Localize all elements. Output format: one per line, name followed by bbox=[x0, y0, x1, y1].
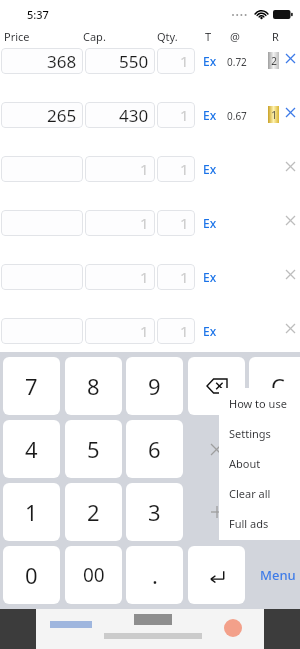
staticText: 6 bbox=[148, 434, 161, 464]
staticText: Ex bbox=[203, 269, 217, 285]
staticText: 1 bbox=[180, 213, 189, 233]
staticText: 00 bbox=[83, 562, 105, 588]
button[interactable]: Ex bbox=[198, 320, 222, 342]
staticText: 9 bbox=[148, 371, 161, 401]
button[interactable]: Multiply bbox=[188, 420, 245, 478]
button[interactable]: 8 bbox=[65, 357, 122, 415]
button[interactable]: 6 bbox=[126, 420, 183, 478]
staticText: 8 bbox=[87, 371, 100, 401]
button[interactable]: 1 bbox=[157, 318, 195, 344]
staticText: 1 bbox=[180, 51, 189, 71]
staticText: How to use bbox=[229, 396, 287, 411]
button[interactable]: Ex bbox=[198, 50, 222, 72]
button[interactable]: 9 bbox=[126, 357, 183, 415]
staticText: 1 bbox=[25, 497, 38, 527]
button[interactable] bbox=[1, 210, 83, 236]
staticText: 1 bbox=[180, 321, 189, 341]
button[interactable]: 1 bbox=[157, 264, 195, 290]
staticText: @ bbox=[230, 29, 240, 44]
button[interactable]: Clear all bbox=[229, 478, 300, 508]
staticText: 3 bbox=[148, 497, 161, 527]
button[interactable]: Delete row bbox=[282, 50, 299, 67]
staticText: 1 bbox=[180, 159, 189, 179]
button[interactable]: Delete row bbox=[282, 158, 299, 175]
staticText: Cap. bbox=[83, 29, 106, 44]
staticText: 550 bbox=[119, 50, 149, 73]
button[interactable]: 1 bbox=[3, 483, 60, 541]
button[interactable]: 5 bbox=[65, 420, 122, 478]
staticText: About bbox=[229, 456, 261, 471]
staticText: 1 bbox=[180, 267, 189, 287]
button[interactable]: C bbox=[249, 357, 300, 415]
button[interactable]: Delete row bbox=[282, 212, 299, 229]
staticText: 0.67 bbox=[227, 109, 247, 123]
staticText: 0.72 bbox=[227, 55, 247, 69]
staticText: Qty. bbox=[157, 29, 178, 44]
staticText: 1 bbox=[140, 213, 149, 233]
staticText: . bbox=[152, 560, 158, 590]
button[interactable]: 1 bbox=[85, 210, 155, 236]
button[interactable] bbox=[1, 156, 83, 182]
staticText: 1 bbox=[271, 108, 277, 122]
staticText: Clear all bbox=[229, 486, 271, 501]
button[interactable]: Delete row bbox=[282, 266, 299, 283]
button[interactable]: 2 bbox=[65, 483, 122, 541]
button[interactable] bbox=[1, 264, 83, 290]
button[interactable]: How to use bbox=[229, 388, 300, 418]
button[interactable]: 1 bbox=[157, 210, 195, 236]
staticText: 1 bbox=[140, 267, 149, 287]
button[interactable] bbox=[1, 318, 83, 344]
button[interactable]: About bbox=[229, 448, 300, 478]
button[interactable]: 1 bbox=[85, 318, 155, 344]
staticText: Full ads bbox=[229, 516, 269, 531]
button[interactable]: 430 bbox=[85, 102, 155, 128]
staticText: Settings bbox=[229, 426, 271, 441]
button[interactable]: 3 bbox=[126, 483, 183, 541]
button[interactable]: 368 bbox=[1, 48, 83, 74]
button[interactable]: Settings bbox=[229, 418, 300, 448]
staticText: Ex bbox=[203, 107, 217, 123]
staticText: 368 bbox=[47, 50, 77, 73]
button[interactable]: 1 bbox=[157, 102, 195, 128]
staticText: 0 bbox=[25, 560, 38, 590]
button[interactable]: Plus bbox=[188, 483, 245, 541]
button[interactable]: Ex bbox=[198, 212, 222, 234]
button[interactable]: Full ads bbox=[229, 508, 300, 538]
button[interactable]: 1 bbox=[157, 156, 195, 182]
button[interactable]: 265 bbox=[1, 102, 83, 128]
staticText: Ex bbox=[203, 53, 217, 69]
button[interactable]: Enter bbox=[188, 546, 245, 604]
button[interactable]: 0 bbox=[3, 546, 60, 604]
staticText: Price bbox=[4, 29, 30, 44]
staticText: 5 bbox=[87, 434, 100, 464]
staticText: 265 bbox=[47, 104, 77, 127]
staticText: 2 bbox=[271, 54, 277, 68]
button[interactable]: . bbox=[126, 546, 183, 604]
staticText: 1 bbox=[180, 105, 189, 125]
button[interactable]: Delete row bbox=[282, 320, 299, 337]
button[interactable]: 00 bbox=[65, 546, 122, 604]
button[interactable]: Ex bbox=[198, 158, 222, 180]
button[interactable]: 1 bbox=[85, 156, 155, 182]
staticText: R bbox=[272, 29, 279, 44]
button[interactable]: 7 bbox=[3, 357, 60, 415]
button[interactable]: Ex bbox=[198, 266, 222, 288]
staticText: 1 bbox=[140, 159, 149, 179]
staticText: T bbox=[205, 29, 212, 44]
staticText: 7 bbox=[25, 371, 38, 401]
button[interactable]: Menu bbox=[249, 546, 300, 604]
staticText: Ex bbox=[203, 161, 217, 177]
button[interactable]: 4 bbox=[3, 420, 60, 478]
button[interactable]: Delete row bbox=[282, 104, 299, 121]
staticText: Ex bbox=[203, 215, 217, 231]
staticText: C bbox=[271, 371, 285, 401]
staticText: Ex bbox=[203, 323, 217, 339]
staticText: 1 bbox=[140, 321, 149, 341]
button[interactable]: 1 bbox=[85, 264, 155, 290]
staticText: Menu bbox=[260, 566, 296, 584]
button[interactable]: 1 bbox=[157, 48, 195, 74]
button[interactable]: Ex bbox=[198, 104, 222, 126]
staticText: 5:37 bbox=[27, 7, 49, 22]
button[interactable]: Backspace bbox=[188, 357, 245, 415]
button[interactable]: 550 bbox=[85, 48, 155, 74]
